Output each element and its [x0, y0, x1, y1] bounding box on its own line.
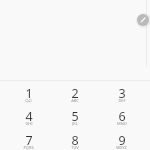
button[interactable]: 3 [98, 83, 145, 107]
staticText: JKL [72, 121, 78, 126]
staticText: 7 [25, 132, 33, 149]
button[interactable]: 2 [51, 83, 98, 107]
button[interactable]: 7 [5, 130, 52, 150]
staticText: WXYZ [116, 145, 127, 150]
button[interactable]: 5 [51, 106, 98, 130]
button[interactable]: Edit [137, 14, 149, 26]
staticText: MNO [117, 121, 127, 126]
staticText: TUV [71, 145, 79, 150]
button[interactable]: 6 [98, 106, 145, 130]
staticText: 5 [71, 108, 79, 125]
staticText: 6 [118, 108, 126, 125]
staticText: GHI [25, 121, 33, 126]
staticText: 3 [118, 85, 126, 102]
staticText: 1 [25, 85, 33, 102]
staticText: 9 [118, 132, 126, 149]
button[interactable]: 4 [5, 106, 52, 130]
button[interactable]: 8 [51, 130, 98, 150]
staticText: PQRS [23, 145, 34, 150]
staticText: 4 [25, 108, 33, 125]
staticText: 8 [71, 132, 79, 149]
staticText: ABC [71, 98, 79, 103]
staticText: DEF [118, 98, 126, 103]
button[interactable]: 9 [98, 130, 145, 150]
button[interactable]: 1 [5, 83, 52, 107]
staticText: 2 [71, 85, 79, 102]
